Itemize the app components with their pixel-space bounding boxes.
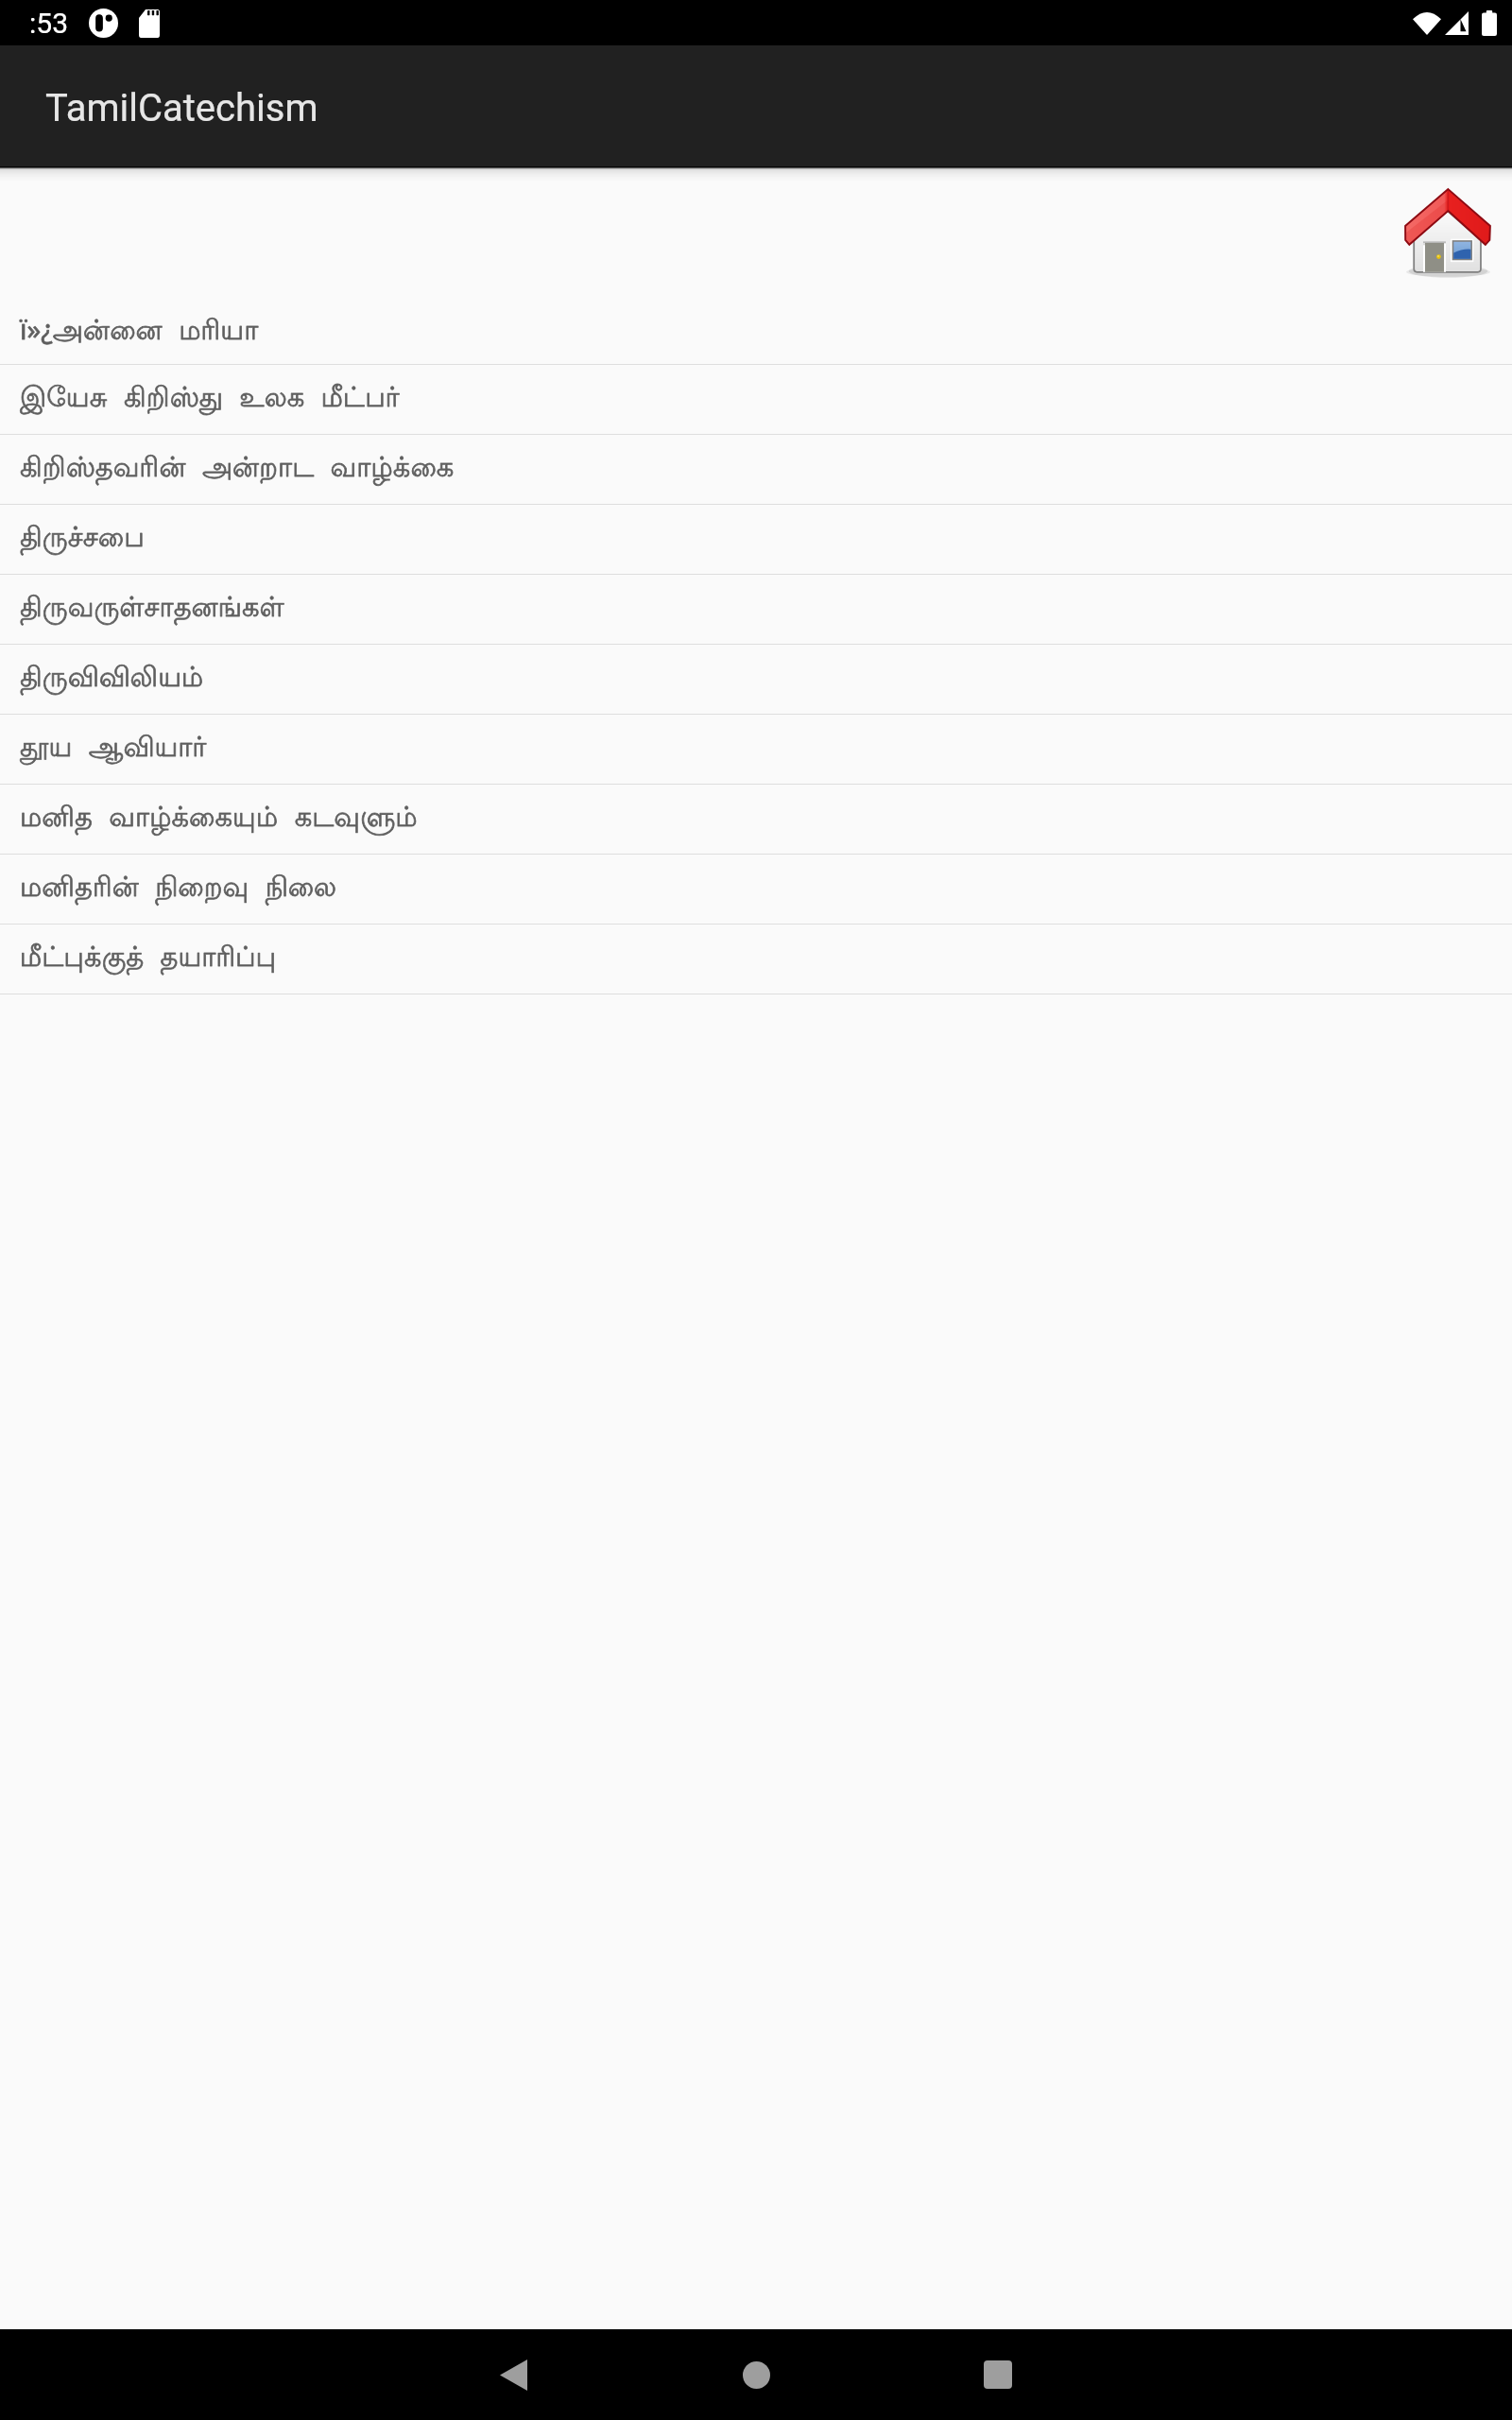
button[interactable]: திருவருள்சாதனங்கள்: [0, 575, 1512, 644]
button[interactable]: Home: [696, 2329, 816, 2420]
staticText: TamilCatechism: [45, 86, 318, 130]
button[interactable]: திருச்சபை: [0, 505, 1512, 574]
button[interactable]: ï»¿அன்னை மரியா: [0, 295, 1512, 364]
button[interactable]: Back: [453, 2329, 574, 2420]
button[interactable]: மனிதரின் நிறைவு நிலை: [0, 855, 1512, 924]
button[interactable]: Recent apps: [937, 2329, 1058, 2420]
button[interactable]: மனித வாழ்க்கையும் கடவுளும்: [0, 785, 1512, 854]
staticText: திருச்சபை: [20, 523, 145, 556]
staticText: திருவருள்சாதனங்கள்: [20, 593, 284, 626]
button[interactable]: திருவிவிலியம்: [0, 645, 1512, 714]
staticText: திருச்சபை: [20, 523, 145, 556]
staticText: இயேசு கிறிஸ்து உலக மீட்பர்: [20, 383, 400, 416]
staticText: இயேசு கிறிஸ்து உலக மீட்பர்: [20, 383, 400, 416]
staticText: மனித வாழ்க்கையும் கடவுளும்: [20, 803, 418, 836]
staticText: கிறிஸ்தவரின் அன்றாட வாழ்க்கை: [20, 453, 455, 486]
staticText: கிறிஸ்தவரின் அன்றாட வாழ்க்கை: [20, 453, 455, 486]
staticText: மனித வாழ்க்கையும் கடவுளும்: [20, 803, 418, 836]
button[interactable]: தூய ஆவியார்: [0, 715, 1512, 784]
staticText: மனிதரின் நிறைவு நிலை: [20, 873, 337, 906]
button[interactable]: மீட்புக்குத் தயாரிப்பு: [0, 925, 1512, 994]
button[interactable]: இயேசு கிறிஸ்து உலக மீட்பர்: [0, 365, 1512, 434]
staticText: திருவிவிலியம்: [20, 663, 204, 696]
staticText: மீட்புக்குத் தயாரிப்பு: [20, 942, 277, 976]
staticText: திருவருள்சாதனங்கள்: [20, 593, 284, 626]
staticText: மனிதரின் நிறைவு நிலை: [20, 873, 337, 906]
staticText: :53: [29, 7, 68, 40]
staticText: மீட்புக்குத் தயாரிப்பு: [20, 942, 277, 976]
button[interactable]: Home: [1404, 188, 1491, 275]
staticText: தூய ஆவியார்: [20, 733, 207, 766]
staticText: ï»¿அன்னை மரியா: [20, 310, 259, 350]
staticText: ï»¿அன்னை மரியா: [20, 310, 259, 350]
staticText: தூய ஆவியார்: [20, 733, 207, 766]
staticText: திருவிவிலியம்: [20, 663, 204, 696]
button[interactable]: கிறிஸ்தவரின் அன்றாட வாழ்க்கை: [0, 435, 1512, 504]
